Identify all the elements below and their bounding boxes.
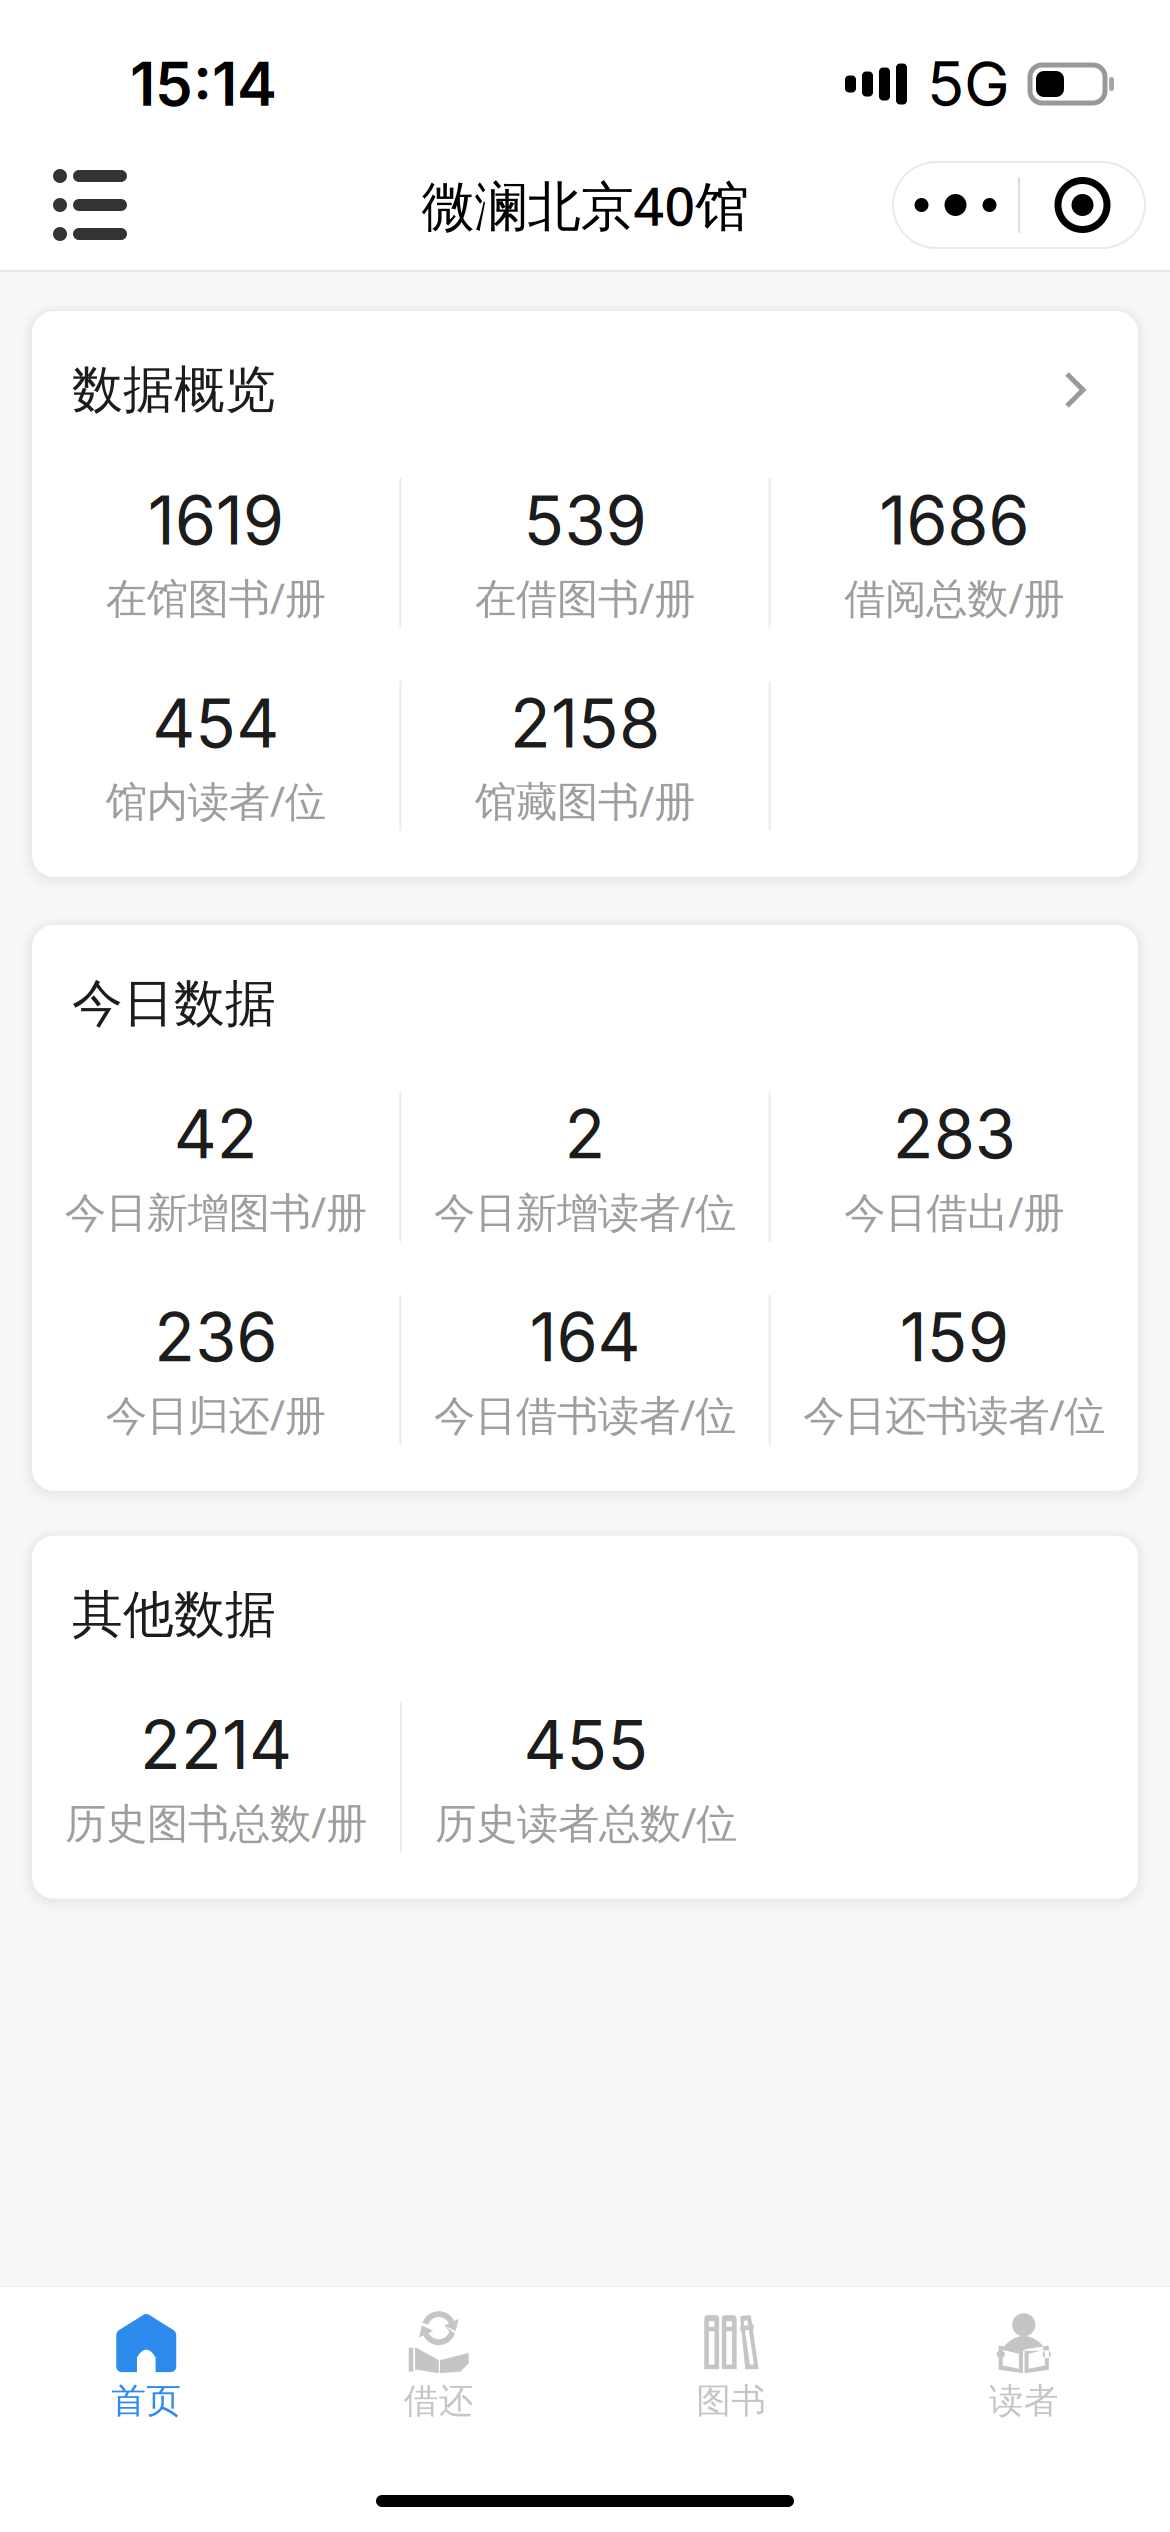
button[interactable]: 更多: [893, 162, 1145, 248]
button[interactable]: 图书: [585, 2311, 877, 2423]
staticText: 其他数据: [72, 1583, 276, 1646]
staticText: 今日借书读者/位: [434, 1386, 736, 1443]
staticText: 42: [174, 1094, 258, 1174]
button[interactable]: 首页: [0, 2311, 292, 2423]
staticText: 539: [523, 480, 646, 560]
staticText: 数据概览: [72, 358, 276, 422]
staticText: 159: [900, 1297, 1009, 1377]
staticText: 读者: [989, 2379, 1059, 2423]
staticText: 15:14: [130, 48, 277, 120]
staticText: 今日数据: [72, 972, 276, 1036]
staticText: 2214: [140, 1704, 292, 1785]
staticText: 历史图书总数/册: [65, 1794, 367, 1850]
button[interactable]: 借还: [292, 2311, 585, 2423]
staticText: 馆藏图书/册: [475, 772, 695, 829]
staticText: 1686: [879, 480, 1029, 560]
staticText: 236: [154, 1297, 277, 1377]
staticText: 首页: [111, 2379, 181, 2423]
staticText: 454: [152, 683, 279, 763]
staticText: 微澜北京40馆: [421, 169, 748, 241]
staticText: 今日借出/册: [844, 1183, 1064, 1240]
staticText: 历史读者总数/位: [435, 1794, 737, 1850]
staticText: 借阅总数/册: [844, 569, 1064, 626]
staticText: 283: [893, 1094, 1016, 1174]
staticText: 164: [529, 1297, 640, 1377]
staticText: 图书: [696, 2379, 766, 2423]
staticText: 借还: [404, 2379, 474, 2423]
button[interactable]: 读者: [877, 2311, 1170, 2423]
button[interactable]: 数据概览: [32, 311, 1138, 877]
staticText: 2158: [510, 683, 660, 763]
staticText: 在馆图书/册: [106, 569, 326, 626]
staticText: 今日还书读者/位: [803, 1386, 1105, 1443]
staticText: 1619: [148, 480, 284, 560]
staticText: 今日归还/册: [106, 1386, 326, 1443]
staticText: 在借图书/册: [475, 569, 695, 626]
staticText: 馆内读者/位: [106, 772, 326, 829]
staticText: 今日新增读者/位: [434, 1183, 736, 1240]
staticText: 455: [523, 1704, 648, 1785]
staticText: 5G: [927, 47, 1010, 121]
staticText: 2: [564, 1094, 605, 1174]
staticText: 今日新增图书/册: [65, 1183, 367, 1240]
button[interactable]: 菜单: [23, 145, 157, 265]
